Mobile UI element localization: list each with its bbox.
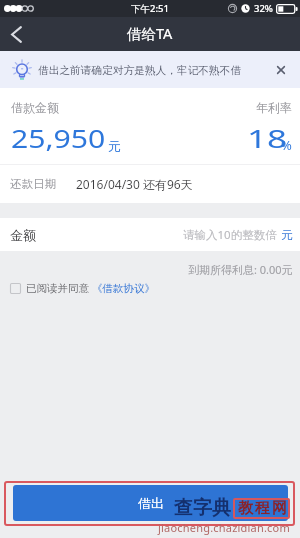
staticText: 元: [281, 228, 293, 242]
staticText: 借给TA: [127, 23, 173, 43]
staticText: 2016/04/30 还有96天: [76, 176, 193, 192]
button[interactable]: 金额: [0, 218, 300, 251]
button[interactable]: Close: [269, 58, 293, 82]
staticText: 借出之前请确定对方是熟人，牢记不熟不借: [38, 64, 242, 77]
staticText: 教程网: [237, 499, 288, 518]
staticText: 查字典: [174, 496, 231, 520]
staticText: 请输入10的整数倍: [183, 227, 277, 243]
staticText: %: [281, 136, 292, 154]
staticText: 25,950: [11, 120, 106, 155]
staticText: 《借款协议》: [92, 282, 155, 295]
staticText: 18: [247, 120, 287, 155]
button[interactable]: 已阅读并同意: [10, 282, 155, 295]
staticText: 下午2:51: [131, 2, 169, 15]
staticText: 金额: [10, 227, 36, 243]
button[interactable]: 借出: [13, 485, 288, 521]
staticText: 元: [108, 138, 121, 154]
staticText: 到期所得利息: 0.00元: [188, 262, 293, 277]
staticText: 还款日期: [10, 177, 56, 191]
button[interactable]: Back: [0, 17, 33, 51]
staticText: 借款金额: [11, 100, 59, 115]
staticText: 年利率: [256, 100, 292, 115]
staticText: 32%: [254, 2, 273, 15]
staticText: 已阅读并同意: [26, 282, 89, 295]
staticText: 借出: [138, 495, 164, 511]
staticText: jiaocheng.chazidian.com: [158, 520, 290, 535]
